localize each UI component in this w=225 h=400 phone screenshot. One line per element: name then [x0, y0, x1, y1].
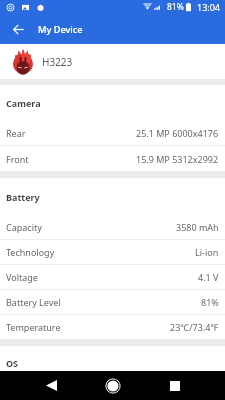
staticText: 4.1 V: [198, 271, 219, 283]
staticText: My Device: [38, 23, 83, 36]
button[interactable]: Battery Level: [0, 290, 225, 315]
button[interactable]: Navigate up: [3, 14, 33, 44]
staticText: Capacity: [6, 221, 42, 233]
staticText: Battery: [6, 191, 40, 203]
staticText: 81%: [201, 296, 219, 308]
staticText: 25.1 MP 6000x4176: [136, 127, 219, 139]
staticText: Voltage: [6, 271, 38, 283]
staticText: Li-ion: [195, 246, 219, 258]
staticText: Front: [6, 153, 29, 165]
staticText: 15.9 MP 5312x2992: [136, 153, 219, 165]
staticText: 3580 mAh: [176, 221, 219, 233]
button[interactable]: Capacity: [0, 215, 225, 240]
staticText: Technology: [6, 246, 55, 258]
staticText: H3223: [42, 55, 73, 69]
button[interactable]: Voltage: [0, 265, 225, 290]
button[interactable]: Home: [96, 371, 130, 400]
staticText: Rear: [6, 127, 26, 139]
button[interactable]: Technology: [0, 240, 225, 265]
staticText: 23℃/73.4℉: [170, 321, 219, 333]
button[interactable]: H3223: [0, 44, 225, 79]
staticText: 13:04: [197, 1, 221, 13]
staticText: 81%: [167, 1, 184, 13]
staticText: Battery Level: [6, 296, 61, 308]
button[interactable]: Rear: [0, 121, 225, 146]
button[interactable]: Front: [0, 146, 225, 171]
staticText: Camera: [6, 97, 41, 109]
staticText: Temperature: [6, 321, 61, 333]
button[interactable]: Recent apps: [158, 371, 192, 400]
button[interactable]: Back: [34, 371, 68, 400]
button[interactable]: Temperature: [0, 315, 225, 339]
staticText: OS: [6, 357, 19, 369]
